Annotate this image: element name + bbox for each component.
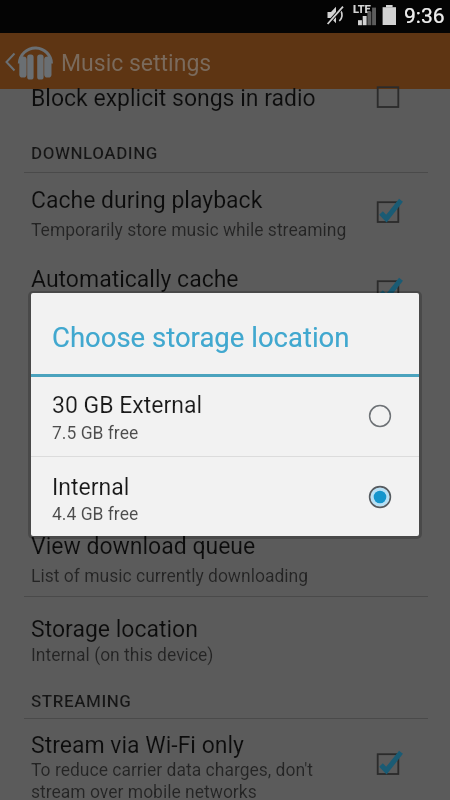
staticText: LTE bbox=[353, 3, 371, 16]
button[interactable] bbox=[0, 611, 450, 674]
staticText: Internal bbox=[52, 474, 130, 501]
staticText: 7.5 GB free bbox=[52, 423, 139, 444]
button[interactable] bbox=[0, 419, 450, 486]
staticText: Only download when on Wi-Fi bbox=[31, 378, 259, 399]
staticText: Storage location bbox=[31, 616, 198, 643]
button[interactable] bbox=[0, 80, 450, 119]
staticText: Temporarily store music while streaming bbox=[31, 220, 347, 241]
staticText: Download quality bbox=[31, 424, 207, 451]
staticText: DOWNLOADING bbox=[31, 143, 158, 163]
button[interactable] bbox=[0, 727, 450, 789]
staticText: To reduce carrier data charges, don't st… bbox=[31, 760, 313, 800]
staticText: Download over Wi-Fi only bbox=[31, 345, 288, 372]
staticText: Cache during playback bbox=[31, 187, 263, 214]
staticText: Automatically cache bbox=[31, 266, 239, 293]
staticText: Choose storage location bbox=[52, 321, 350, 353]
button[interactable] bbox=[0, 261, 450, 328]
button[interactable] bbox=[0, 340, 450, 407]
staticText: List of music currently downloading bbox=[31, 566, 309, 587]
staticText: 30 GB External bbox=[52, 392, 203, 419]
staticText: 9:36 bbox=[404, 4, 445, 29]
staticText: 4.4 GB free bbox=[52, 504, 139, 525]
button[interactable] bbox=[31, 457, 419, 536]
staticText: Block explicit songs in radio bbox=[31, 85, 316, 112]
staticText: Internal (on this device) bbox=[31, 645, 214, 666]
staticText: STREAMING bbox=[31, 691, 132, 711]
button[interactable] bbox=[0, 182, 450, 249]
button[interactable] bbox=[31, 377, 419, 456]
button[interactable] bbox=[0, 528, 450, 595]
staticText: Music settings bbox=[61, 50, 212, 77]
staticText: View download queue bbox=[31, 533, 256, 560]
other: Navigate up bbox=[2, 50, 18, 74]
button[interactable]: Music settings bbox=[0, 33, 450, 89]
staticText: Stream via Wi-Fi only bbox=[31, 732, 244, 759]
